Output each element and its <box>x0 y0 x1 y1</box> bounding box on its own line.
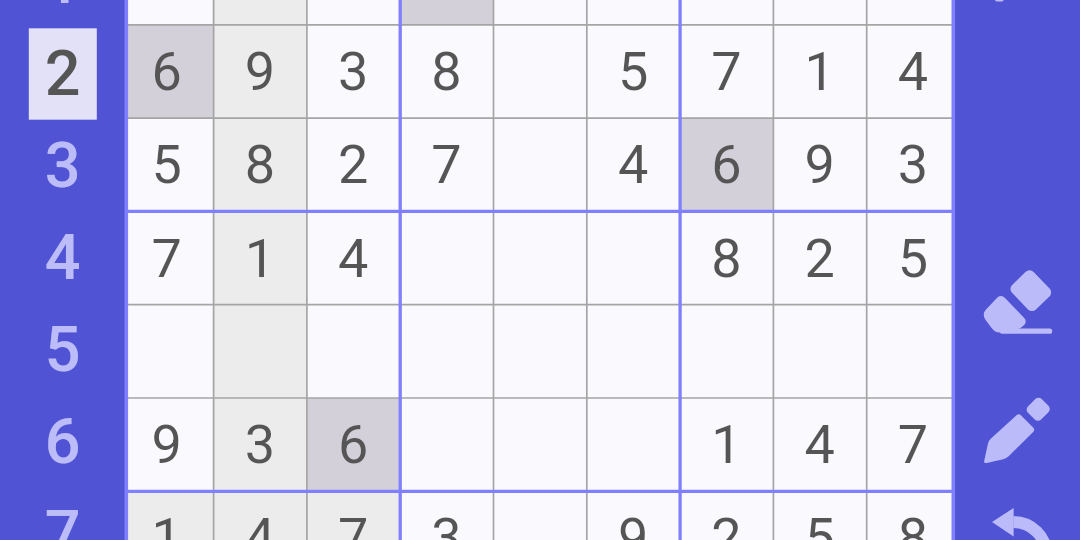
button[interactable]: Undo <box>975 496 1063 540</box>
button[interactable]: Cell row 4 column 7 value 8 <box>680 211 773 304</box>
button[interactable]: Empty cell row 5 column 6 <box>587 305 680 398</box>
button[interactable]: Empty cell row 5 column 4 <box>400 305 493 398</box>
button[interactable]: Empty cell row 1 column 6 <box>587 0 680 25</box>
button[interactable]: Cell row 6 column 2 value 3 <box>214 398 307 491</box>
button[interactable]: Number 5 <box>14 304 112 396</box>
button[interactable]: Number 2 <box>14 28 112 120</box>
button[interactable]: Number 6 <box>14 396 112 488</box>
button[interactable]: Cell row 3 column 3 value 2 <box>307 118 400 211</box>
button[interactable]: Cell row 3 column 8 value 9 <box>773 118 866 211</box>
button[interactable]: Cell row 4 column 2 value 1 <box>214 211 307 304</box>
button[interactable]: Erase <box>975 258 1063 344</box>
button[interactable]: Empty cell row 4 column 5 <box>494 211 587 304</box>
button[interactable]: Cell row 2 column 2 value 9 <box>214 25 307 118</box>
button[interactable]: Cell row 3 column 1 value 5 <box>120 118 213 211</box>
button[interactable]: Cell row 7 column 8 value 5 <box>773 491 866 540</box>
button[interactable]: Empty cell row 5 column 3 <box>307 305 400 398</box>
button[interactable]: Cell row 2 column 9 value 4 <box>867 25 960 118</box>
button[interactable]: Number 4 <box>14 212 112 304</box>
button[interactable]: Cell row 4 column 1 value 7 <box>120 211 213 304</box>
button[interactable]: Cell row 6 column 8 value 4 <box>773 398 866 491</box>
button[interactable]: Empty cell row 3 column 5 <box>494 118 587 211</box>
button[interactable]: Hint <box>975 0 1063 12</box>
button[interactable]: Cell row 3 column 9 value 3 <box>867 118 960 211</box>
button[interactable]: Cell row 4 column 9 value 5 <box>867 211 960 304</box>
button[interactable]: Empty cell row 2 column 5 <box>494 25 587 118</box>
button[interactable]: Empty cell row 7 column 5 <box>494 491 587 540</box>
button[interactable]: Empty cell row 1 column 3 <box>307 0 400 25</box>
button[interactable]: Cell row 3 column 4 value 7 <box>400 118 493 211</box>
button[interactable]: Cell row 7 column 7 value 2 <box>680 491 773 540</box>
button[interactable]: Cell row 4 column 8 value 2 <box>773 211 866 304</box>
button[interactable]: Empty cell row 1 column 8 <box>773 0 866 25</box>
button[interactable]: Cell row 7 column 2 value 4 <box>214 491 307 540</box>
button[interactable]: Cell row 2 column 8 value 1 <box>773 25 866 118</box>
button[interactable]: Cell row 1 column 4 value 6 <box>400 0 493 25</box>
button[interactable]: Empty cell row 4 column 4 <box>400 211 493 304</box>
button[interactable]: Empty cell row 1 column 1 <box>120 0 213 25</box>
button[interactable]: Cell row 6 column 9 value 7 <box>867 398 960 491</box>
button[interactable]: Empty cell row 5 column 9 <box>867 305 960 398</box>
button[interactable]: Empty cell row 1 column 9 <box>867 0 960 25</box>
button[interactable]: Empty cell row 5 column 8 <box>773 305 866 398</box>
button[interactable]: Cell row 3 column 6 value 4 <box>587 118 680 211</box>
button[interactable]: Cell row 6 column 3 value 6 <box>307 398 400 491</box>
button[interactable]: Empty cell row 5 column 7 <box>680 305 773 398</box>
button[interactable]: Cell row 7 column 4 value 3 <box>400 491 493 540</box>
button[interactable]: Cell row 7 column 1 value 1 <box>120 491 213 540</box>
button[interactable]: Empty cell row 5 column 1 <box>120 305 213 398</box>
button[interactable]: Cell row 2 column 3 value 3 <box>307 25 400 118</box>
button[interactable]: Number 1 <box>14 0 112 28</box>
button[interactable]: Pencil notes <box>975 388 1063 474</box>
button[interactable]: Empty cell row 1 column 2 <box>214 0 307 25</box>
button[interactable]: Number 7 <box>14 488 112 540</box>
button[interactable]: Cell row 2 column 4 value 8 <box>400 25 493 118</box>
button[interactable]: Empty cell row 1 column 5 <box>494 0 587 25</box>
button[interactable]: Empty cell row 5 column 5 <box>494 305 587 398</box>
button[interactable]: Empty cell row 6 column 5 <box>494 398 587 491</box>
button[interactable]: Cell row 6 column 7 value 1 <box>680 398 773 491</box>
button[interactable]: Empty cell row 6 column 4 <box>400 398 493 491</box>
button[interactable]: Empty cell row 5 column 2 <box>214 305 307 398</box>
button[interactable]: Cell row 2 column 1 value 6 <box>120 25 213 118</box>
button[interactable]: Empty cell row 4 column 6 <box>587 211 680 304</box>
button[interactable]: Cell row 7 column 6 value 9 <box>587 491 680 540</box>
button[interactable]: Number 3 <box>14 120 112 212</box>
button[interactable]: Cell row 7 column 3 value 7 <box>307 491 400 540</box>
button[interactable]: Cell row 3 column 2 value 8 <box>214 118 307 211</box>
button[interactable]: Cell row 4 column 3 value 4 <box>307 211 400 304</box>
button[interactable]: Empty cell row 6 column 6 <box>587 398 680 491</box>
button[interactable]: Empty cell row 1 column 7 <box>680 0 773 25</box>
button[interactable]: Cell row 2 column 7 value 7 <box>680 25 773 118</box>
button[interactable]: Cell row 2 column 6 value 5 <box>587 25 680 118</box>
button[interactable]: Cell row 3 column 7 value 6 <box>680 118 773 211</box>
button[interactable]: Cell row 7 column 9 value 8 <box>867 491 960 540</box>
button[interactable]: Cell row 6 column 1 value 9 <box>120 398 213 491</box>
